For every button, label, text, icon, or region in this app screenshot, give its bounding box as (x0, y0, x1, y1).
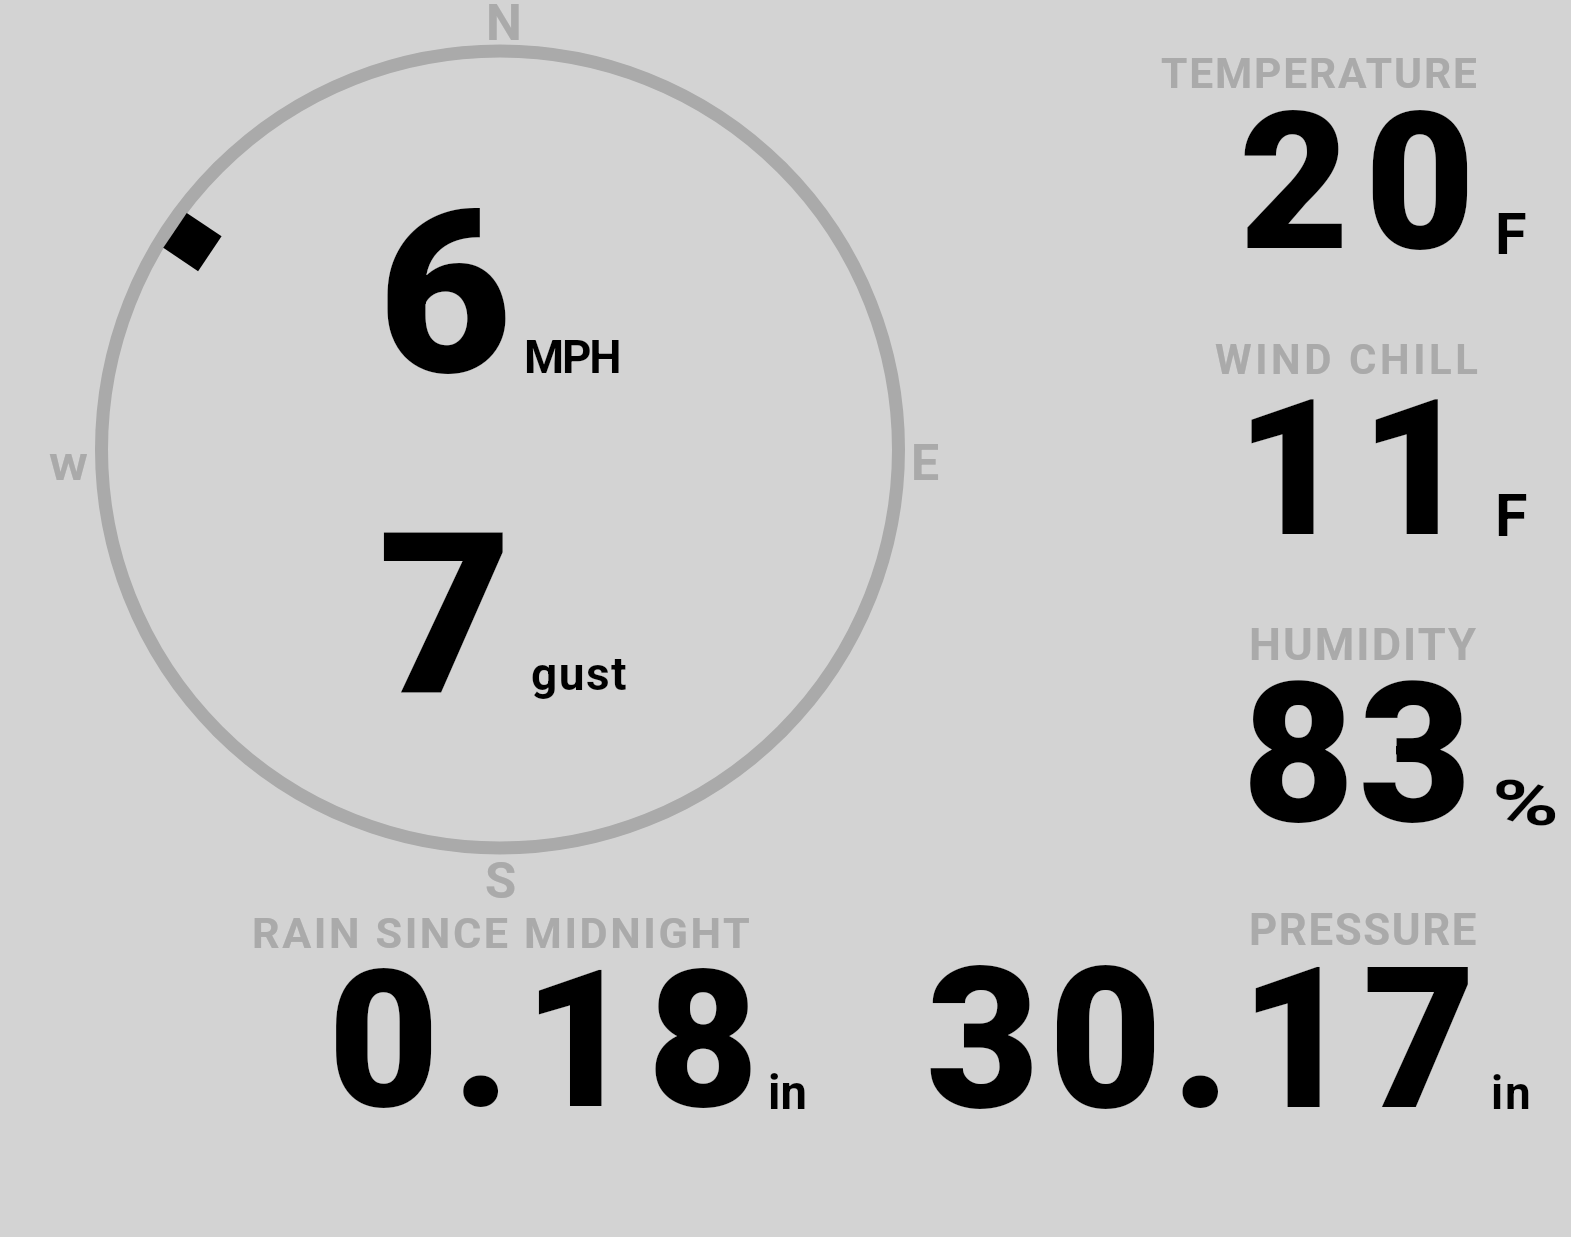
staticText: HUMIDITY (1249, 618, 1479, 671)
staticText: N (486, 0, 522, 52)
button[interactable]: Temperature 20 degrees Fahrenheit (1130, 40, 1571, 270)
staticText: 83 (1242, 641, 1476, 869)
staticText: in (768, 1065, 808, 1120)
staticText: 0.18 (328, 928, 772, 1153)
staticText: RAIN SINCE MIDNIGHT (252, 908, 753, 959)
staticText: 7 (378, 484, 512, 746)
button[interactable]: Rain since midnight 0.18 inches (240, 895, 820, 1125)
staticText: in (1491, 1066, 1533, 1120)
staticText: MPH (524, 331, 620, 385)
button[interactable]: Wind chill 11 degrees Fahrenheit (1130, 325, 1571, 555)
staticText: WIND CHILL (1215, 335, 1482, 384)
staticText: 11 (1236, 358, 1485, 581)
button[interactable]: Wind 6 miles per hour, gusting 7, from t… (90, 40, 910, 860)
button[interactable]: Humidity 83 percent (1130, 610, 1571, 840)
staticText: PRESSURE (1249, 904, 1478, 955)
staticText: 30.17 (926, 925, 1486, 1155)
staticText: W (49, 445, 88, 489)
staticText: gust (531, 647, 628, 701)
staticText: 20 (1239, 71, 1491, 294)
button[interactable]: Pressure 30.17 inches (880, 895, 1570, 1125)
staticText: 6 (378, 161, 512, 427)
staticText: F (1495, 481, 1528, 550)
staticText: % (1492, 767, 1560, 841)
staticText: E (911, 434, 940, 493)
staticText: F (1495, 200, 1527, 268)
staticText: S (485, 851, 517, 910)
staticText: TEMPERATURE (1161, 49, 1479, 99)
